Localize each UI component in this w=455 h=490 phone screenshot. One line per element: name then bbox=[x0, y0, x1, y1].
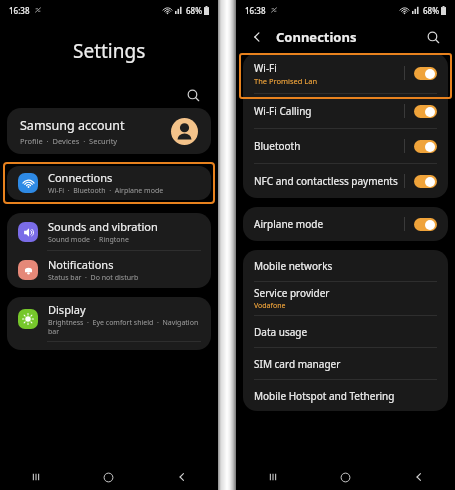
button[interactable]: Notifications bbox=[7, 251, 211, 288]
staticText: Sound mode · Ringtone bbox=[48, 235, 129, 245]
button[interactable]: Wi-Fi bbox=[243, 53, 448, 93]
staticText: Service provider bbox=[254, 286, 330, 300]
staticText: Airplane mode bbox=[254, 217, 324, 231]
button[interactable]: On bbox=[414, 218, 437, 231]
button[interactable]: On bbox=[414, 67, 437, 80]
button[interactable]: Back bbox=[145, 464, 218, 490]
button[interactable]: Search bbox=[422, 26, 444, 48]
button[interactable]: Mobile networks bbox=[243, 250, 448, 281]
button[interactable]: Search settings bbox=[182, 84, 204, 106]
button[interactable]: On bbox=[414, 175, 437, 188]
button[interactable]: On bbox=[414, 140, 437, 153]
button[interactable]: Home bbox=[309, 464, 382, 490]
button[interactable]: On bbox=[414, 105, 437, 118]
staticText: Wi-Fi · Bluetooth · Airplane mode bbox=[48, 186, 164, 196]
button[interactable]: Wi-Fi Calling bbox=[243, 94, 448, 128]
button[interactable]: Home bbox=[72, 464, 145, 490]
staticText: NFC and contactless payments bbox=[254, 174, 398, 188]
staticText: 16:38 bbox=[245, 5, 266, 16]
staticText: Wi-Fi Calling bbox=[254, 104, 312, 118]
staticText: The Promised Lan bbox=[254, 76, 318, 86]
staticText: Display bbox=[48, 302, 86, 317]
staticText: Wi-Fi bbox=[254, 61, 277, 75]
staticText: Samsung account bbox=[20, 117, 125, 134]
staticText: Mobile Hotspot and Tethering bbox=[254, 389, 395, 403]
button[interactable]: Bluetooth bbox=[243, 129, 448, 163]
staticText: 68% bbox=[186, 5, 202, 16]
staticText: SIM card manager bbox=[254, 357, 341, 371]
button[interactable]: Back bbox=[247, 27, 267, 47]
button[interactable]: Samsung account bbox=[7, 108, 211, 154]
staticText: Status bar · Do not disturb bbox=[48, 273, 139, 283]
button[interactable]: Service provider bbox=[243, 282, 448, 315]
staticText: Brightness · Eye comfort shield · Naviga… bbox=[48, 318, 200, 336]
staticText: Connections bbox=[276, 28, 357, 46]
staticText: 68% bbox=[423, 5, 439, 16]
staticText: Vodafone bbox=[254, 301, 286, 311]
staticText: Notifications bbox=[48, 257, 114, 272]
staticText: Settings bbox=[73, 38, 146, 64]
button[interactable]: Display bbox=[7, 297, 211, 341]
staticText: 16:38 bbox=[9, 5, 30, 16]
button[interactable]: NFC and contactless payments bbox=[243, 164, 448, 198]
staticText: Bluetooth bbox=[254, 139, 301, 153]
button[interactable]: Airplane mode bbox=[243, 207, 448, 241]
button[interactable]: Back bbox=[382, 464, 455, 490]
staticText: Sounds and vibration bbox=[48, 219, 158, 234]
button[interactable]: Data usage bbox=[243, 316, 448, 347]
button[interactable]: Connections bbox=[7, 166, 211, 200]
staticText: Profile · Devices · Security bbox=[20, 136, 118, 146]
staticText: Data usage bbox=[254, 325, 308, 339]
button[interactable]: Sounds and vibration bbox=[7, 213, 211, 250]
button[interactable]: Recent apps bbox=[236, 464, 309, 490]
button[interactable]: Mobile Hotspot and Tethering bbox=[243, 380, 448, 411]
staticText: Connections bbox=[48, 170, 113, 185]
staticText: Mobile networks bbox=[254, 259, 333, 273]
button[interactable]: SIM card manager bbox=[243, 348, 448, 379]
button[interactable]: Recent apps bbox=[0, 464, 72, 490]
